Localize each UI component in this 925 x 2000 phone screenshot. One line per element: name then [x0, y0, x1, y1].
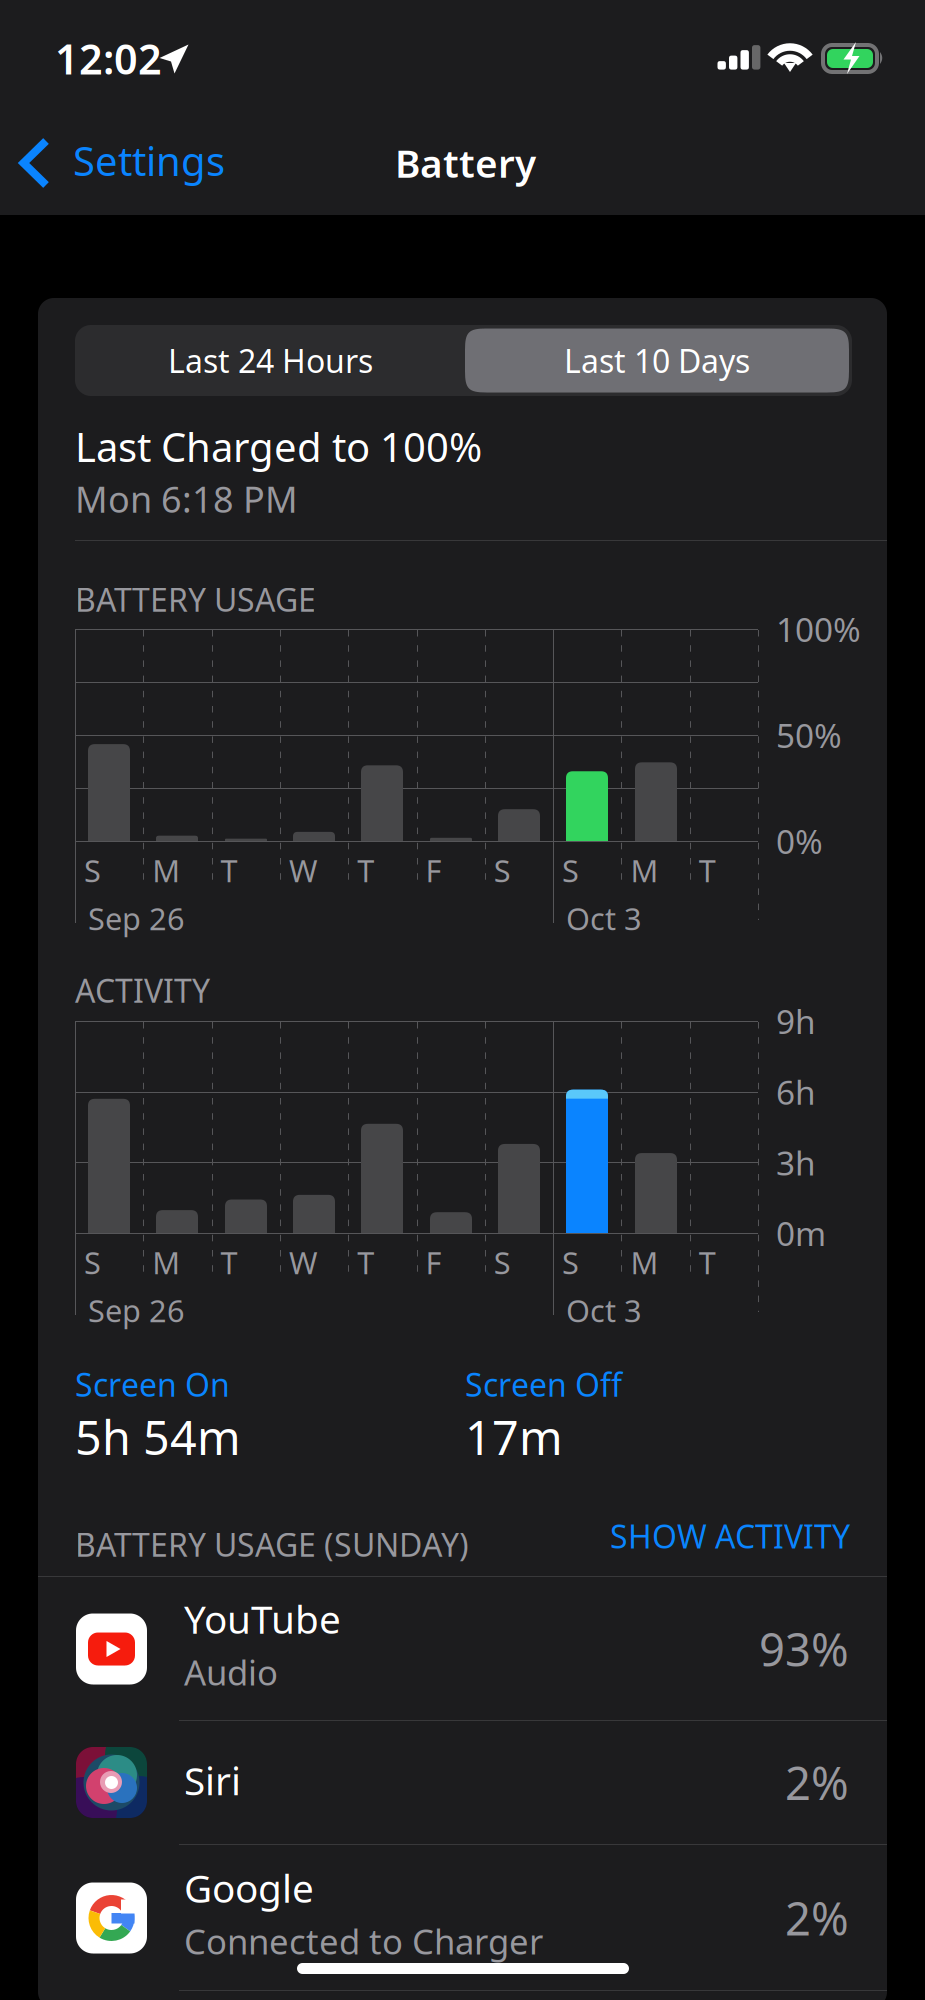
staticText: 100% [776, 607, 861, 651]
staticText: 2% [785, 1752, 849, 1813]
staticText: 6h [776, 1070, 816, 1114]
staticText: Last 10 Days [564, 339, 750, 382]
staticText: 50% [776, 713, 842, 757]
staticText: Oct 3 [566, 898, 642, 939]
staticText: F [425, 1242, 441, 1283]
staticText: 5h 54m [75, 1406, 241, 1468]
staticText: M [630, 1242, 658, 1283]
staticText: Mon 6:18 PM [75, 475, 298, 523]
staticText: 93% [759, 1619, 849, 1679]
staticText: Screen Off [465, 1363, 622, 1405]
staticText: Siri [184, 1754, 241, 1806]
staticText: S [84, 1242, 101, 1283]
staticText: S [562, 1242, 579, 1283]
staticText: T [357, 1242, 374, 1283]
staticText: Last Charged to 100% [75, 420, 482, 473]
staticText: 0m [776, 1211, 826, 1255]
staticText: M [152, 1242, 180, 1283]
staticText: SHOW ACTIVITY [610, 1515, 850, 1557]
button[interactable]: YouTube [38, 1577, 887, 1721]
staticText: W [289, 850, 318, 891]
staticText: 12:02 [55, 31, 162, 86]
staticText: 0% [776, 819, 823, 863]
staticText: BATTERY USAGE [75, 578, 316, 620]
staticText: T [699, 850, 716, 891]
staticText: 17m [465, 1406, 563, 1468]
staticText: Screen On [75, 1363, 230, 1405]
staticText: T [357, 850, 374, 891]
staticText: W [289, 1242, 318, 1283]
staticText: T [221, 1242, 238, 1283]
button[interactable]: Siri [38, 1721, 887, 1844]
staticText: Battery [395, 137, 536, 188]
staticText: Settings [73, 134, 225, 187]
staticText: BATTERY USAGE (SUNDAY) [75, 1523, 469, 1565]
staticText: S [494, 1242, 511, 1283]
staticText: T [221, 850, 238, 891]
button[interactable]: Settings [0, 118, 238, 213]
staticText: Last 24 Hours [168, 339, 373, 382]
staticText: Oct 3 [566, 1290, 642, 1331]
staticText: Sep 26 [88, 898, 185, 939]
staticText: Audio [184, 1649, 278, 1695]
staticText: F [425, 850, 441, 891]
button[interactable]: Last 24 Hours [75, 325, 466, 396]
staticText: M [152, 850, 180, 891]
staticText: S [562, 850, 579, 891]
staticText: M [630, 850, 658, 891]
staticText: 3h [776, 1140, 816, 1185]
staticText: 9h [776, 999, 816, 1043]
button[interactable]: Google [38, 1845, 887, 1991]
staticText: 2% [785, 1888, 849, 1948]
staticText: Sep 26 [88, 1290, 185, 1331]
staticText: YouTube [184, 1593, 341, 1644]
staticText: S [494, 850, 511, 891]
staticText: ACTIVITY [75, 969, 210, 1011]
staticText: S [84, 850, 101, 891]
staticText: T [699, 1242, 716, 1283]
staticText: Google [184, 1862, 314, 1913]
button[interactable]: SHOW ACTIVITY [590, 1511, 850, 1561]
staticText: Connected to Charger [184, 1918, 543, 1964]
button[interactable]: Last 10 Days [465, 328, 849, 392]
